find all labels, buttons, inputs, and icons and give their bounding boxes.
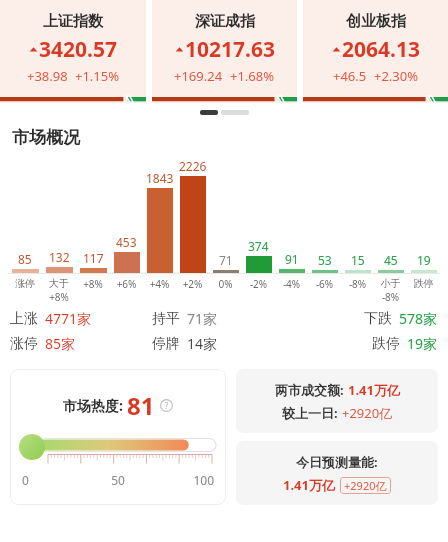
staticText: 85	[18, 251, 32, 267]
staticText: 15	[351, 252, 365, 268]
staticText: 50	[86, 472, 150, 488]
staticText: 下跌	[364, 310, 392, 328]
staticText: +2920亿	[342, 404, 393, 422]
staticText: 71	[219, 252, 233, 268]
staticText: 0	[22, 472, 86, 488]
button[interactable]: 今日预测量能:	[236, 441, 438, 505]
staticText: 涨停	[8, 277, 42, 290]
staticText: -8%	[341, 277, 374, 291]
staticText: 跌停	[407, 277, 440, 290]
staticText: 2226	[179, 158, 207, 174]
staticText: +4%	[143, 277, 176, 291]
staticText: -6%	[308, 277, 341, 291]
staticText: 91	[285, 251, 299, 267]
staticText: 100	[150, 472, 214, 488]
staticText: 132	[49, 249, 70, 265]
staticText: 1.41万亿	[283, 476, 335, 494]
staticText: 停牌	[152, 335, 180, 353]
staticText: 117	[83, 250, 104, 266]
staticText: 市场概况	[12, 127, 80, 148]
staticText: 深证成指	[195, 12, 255, 31]
staticText: 跌停	[372, 335, 400, 353]
staticText: 19	[417, 252, 431, 268]
staticText: 市场热度:	[63, 396, 127, 415]
staticText: 较上一日:	[282, 404, 342, 422]
staticText: 81	[127, 389, 155, 422]
button[interactable]: 创业板指	[303, 0, 448, 103]
staticText: 45	[384, 252, 398, 268]
staticText: 大于 +8%	[42, 277, 76, 303]
staticText: 两市成交额:	[275, 381, 348, 399]
staticText: ?	[160, 400, 173, 412]
button[interactable]: 深证成指	[152, 0, 297, 103]
staticText: 1.41万亿	[348, 381, 400, 399]
staticText: 创业板指	[346, 12, 406, 31]
staticText: +1.68%	[230, 67, 275, 85]
staticText: 19家	[407, 334, 438, 353]
button[interactable]: 上证指数	[0, 0, 146, 103]
staticText: 持平	[152, 310, 180, 328]
staticText: +2%	[176, 277, 209, 291]
staticText: 今日预测量能:	[296, 453, 378, 471]
staticText: 453	[116, 234, 137, 250]
staticText: 85家	[45, 334, 76, 353]
staticText: 上涨	[10, 310, 38, 328]
staticText: 1843	[146, 170, 174, 186]
staticText: +6%	[110, 277, 143, 291]
staticText: 374	[248, 238, 269, 254]
staticText: +169.24	[174, 67, 223, 85]
staticText: 涨停	[10, 335, 38, 353]
staticText: 53	[318, 252, 332, 268]
button[interactable]: 两市成交额:	[236, 369, 438, 433]
staticText: 578家	[399, 309, 438, 328]
staticText: +2920亿	[344, 478, 387, 493]
staticText: -4%	[275, 277, 308, 291]
staticText: 14家	[187, 334, 218, 353]
staticText: +38.98	[27, 67, 68, 85]
staticText: +2.30%	[374, 67, 419, 85]
staticText: 上证指数	[43, 12, 103, 31]
staticText: 2064.13	[342, 35, 420, 64]
staticText: 小于 -8%	[374, 277, 407, 303]
button[interactable]: 市场热度:	[10, 369, 226, 505]
staticText: 4771家	[45, 309, 92, 328]
staticText: 71家	[187, 309, 218, 328]
staticText: 3420.57	[39, 35, 117, 64]
staticText: +8%	[76, 277, 110, 291]
staticText: 0%	[209, 277, 242, 291]
button[interactable]: 说明	[160, 399, 173, 412]
staticText: 10217.63	[185, 35, 275, 64]
staticText: +46.5	[333, 67, 367, 85]
staticText: -2%	[242, 277, 275, 291]
staticText: +1.15%	[75, 67, 120, 85]
